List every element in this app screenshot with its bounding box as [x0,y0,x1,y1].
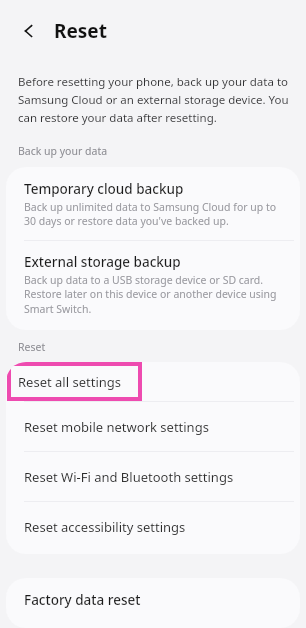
staticText: Reset all settings [18,373,121,391]
button[interactable]: Back [16,18,42,44]
staticText: Reset Wi-Fi and Bluetooth settings [24,468,234,486]
button[interactable]: Reset mobile network settings [6,402,300,451]
staticText: Back up your data [18,144,108,158]
staticText: External storage backup [24,253,181,271]
button[interactable]: Factory data reset [6,578,300,628]
button[interactable]: Reset accessibility settings [6,502,300,551]
button[interactable]: Temporary cloud backup [6,167,300,240]
staticText: Factory data reset [24,591,141,609]
staticText: Back up data to a USB storage device or … [24,273,286,316]
staticText: Reset mobile network settings [24,418,209,436]
button[interactable]: Reset Wi-Fi and Bluetooth settings [6,452,300,501]
staticText: Reset [54,18,107,44]
button[interactable]: Reset all settings [6,362,300,401]
staticText: Temporary cloud backup [24,180,184,198]
staticText: Before resetting your phone, back up you… [18,74,290,125]
staticText: Reset [18,340,46,354]
staticText: Reset accessibility settings [24,518,186,536]
staticText: Back up unlimited data to Samsung Cloud … [24,200,286,228]
button[interactable]: External storage backup [6,241,300,330]
